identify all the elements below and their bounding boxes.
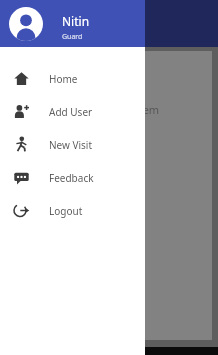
staticText: Feedback — [49, 171, 94, 185]
button[interactable]: Nitin — [0, 0, 145, 47]
button[interactable]: New Visit — [0, 128, 145, 161]
staticText: New Visit — [49, 138, 93, 152]
other: Feedback — [26, 135, 54, 163]
staticText: Logout — [49, 204, 83, 218]
button[interactable]: Feedback — [0, 161, 145, 194]
staticText: Home — [49, 72, 78, 86]
staticText: Add User — [49, 105, 93, 119]
button[interactable]: Feedback — [22, 135, 58, 179]
button[interactable]: Logout — [0, 194, 145, 227]
button[interactable]: Add User — [0, 95, 145, 128]
staticText: Nitin — [62, 13, 90, 29]
staticText: Guard — [62, 32, 83, 42]
staticText: Feedback — [22, 168, 58, 179]
staticText: Visitor Management System — [14, 102, 160, 117]
button[interactable]: Home — [0, 62, 145, 95]
